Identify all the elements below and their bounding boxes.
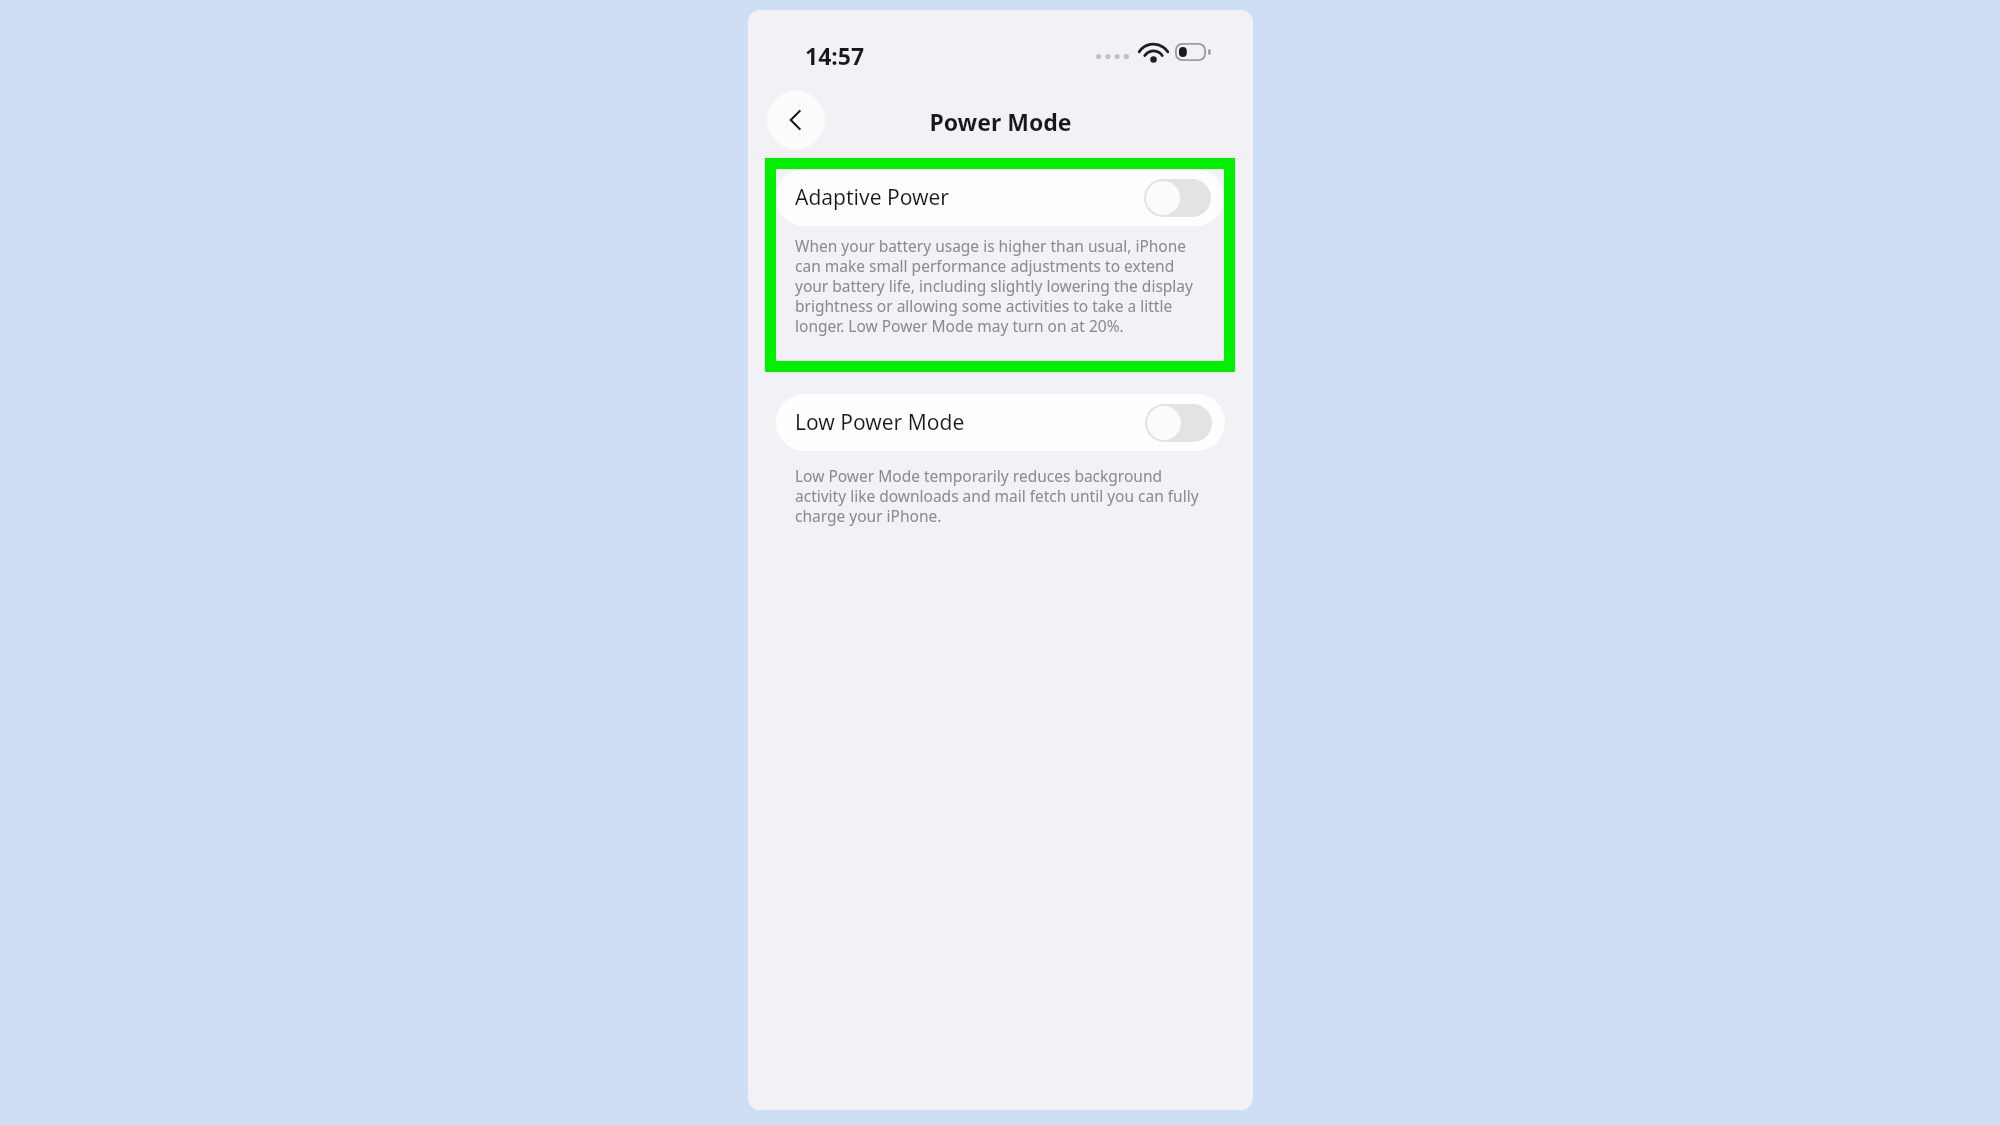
- button[interactable]: Low Power Mode: [776, 394, 1225, 451]
- staticText: Low Power Mode temporarily reduces backg…: [795, 465, 1206, 527]
- button[interactable]: Toggle: [1144, 179, 1211, 217]
- staticText: Power Mode: [748, 106, 1253, 137]
- staticText: Low Power Mode: [795, 408, 965, 437]
- button[interactable]: Toggle: [1145, 404, 1212, 442]
- button[interactable]: Adaptive Power: [776, 169, 1224, 226]
- staticText: Adaptive Power: [795, 183, 950, 212]
- staticText: 14:57: [805, 40, 865, 71]
- staticText: When your battery usage is higher than u…: [795, 235, 1205, 337]
- button[interactable]: Back: [767, 91, 825, 149]
